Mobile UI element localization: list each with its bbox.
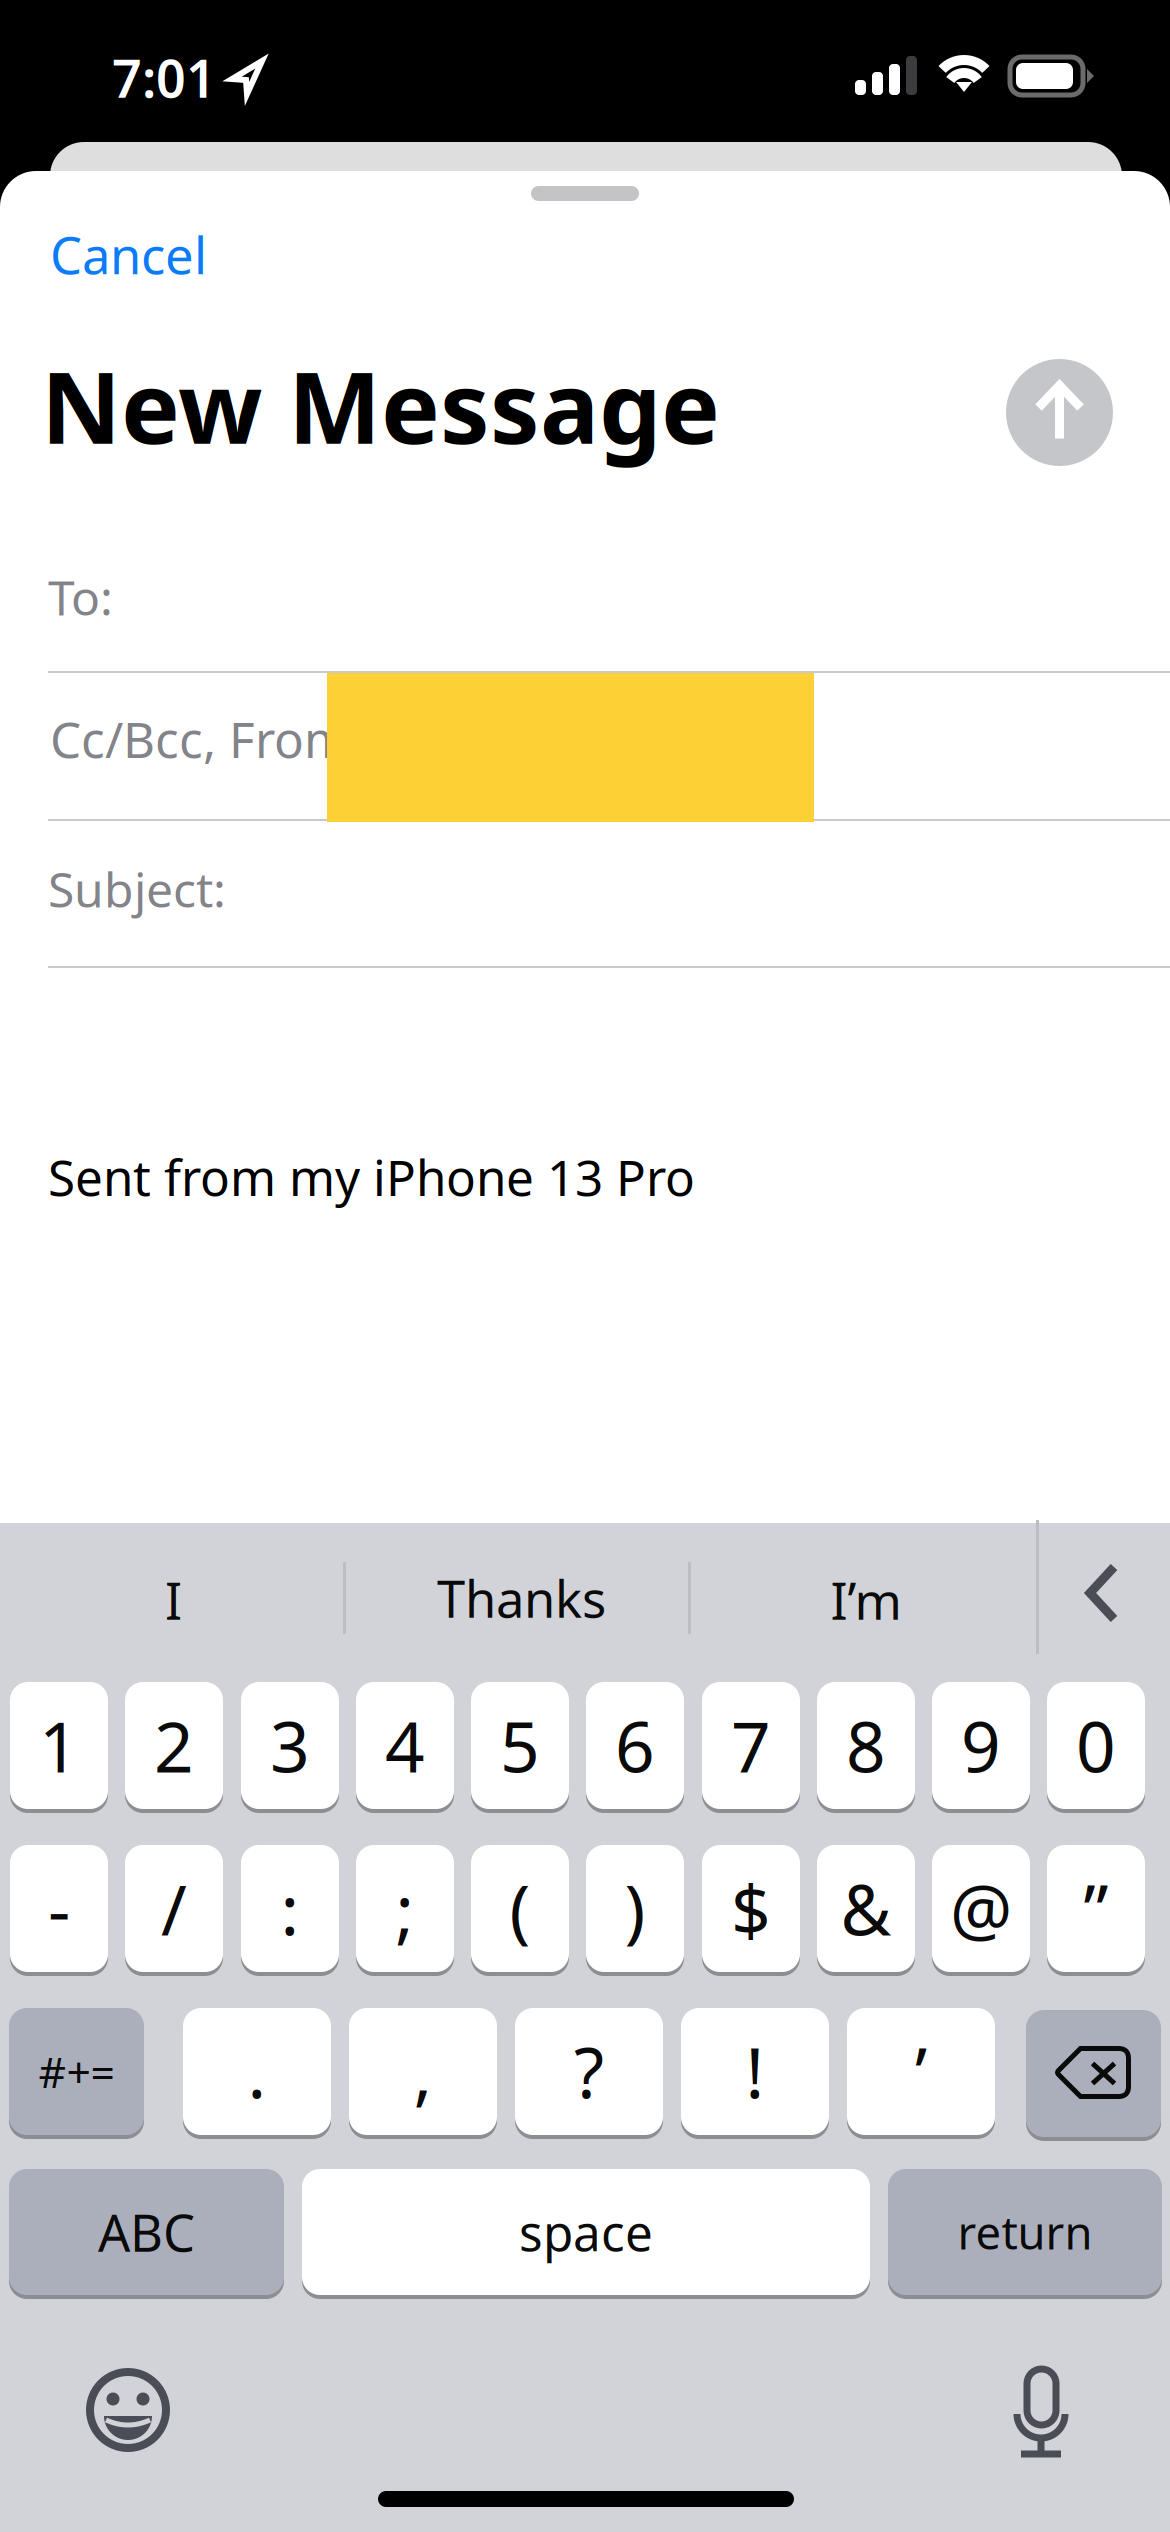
- button[interactable]: space: [302, 2169, 870, 2299]
- button[interactable]: I: [2, 1540, 345, 1660]
- staticText: ): [624, 1862, 645, 1955]
- staticText: return: [957, 2202, 1092, 2262]
- staticText: ’: [915, 2025, 927, 2118]
- staticText: 5: [500, 1699, 540, 1792]
- button[interactable]: I’m: [692, 1540, 1040, 1660]
- button[interactable]: Delete: [1026, 2008, 1161, 2139]
- staticText: Sent from my iPhone 13 Pro: [48, 1144, 695, 1209]
- staticText: I’m: [830, 1566, 901, 1634]
- button[interactable]: &: [817, 1845, 915, 1976]
- button[interactable]: 3: [241, 1682, 339, 1813]
- staticText: Subject:: [48, 857, 226, 921]
- button[interactable]: !: [681, 2008, 829, 2139]
- staticText: .: [247, 2025, 266, 2118]
- staticText: 2: [154, 1699, 194, 1792]
- button[interactable]: ’: [847, 2008, 995, 2139]
- button[interactable]: Cc/Bcc, From: [0, 671, 1170, 819]
- button[interactable]: 9: [932, 1682, 1030, 1813]
- staticText: 1: [39, 1699, 79, 1792]
- staticText: ABC: [98, 2198, 195, 2266]
- staticText: @: [950, 1862, 1012, 1955]
- button[interactable]: :: [241, 1845, 339, 1976]
- button[interactable]: 8: [817, 1682, 915, 1813]
- button[interactable]: Cancel: [0, 213, 260, 309]
- staticText: (: [509, 1862, 530, 1955]
- button[interactable]: 1: [10, 1682, 108, 1813]
- button[interactable]: 7: [702, 1682, 800, 1813]
- button[interactable]: ?: [515, 2008, 663, 2139]
- staticText: 7:01: [112, 43, 216, 112]
- staticText: Thanks: [437, 1564, 606, 1632]
- button[interactable]: #+=: [9, 2008, 144, 2139]
- button[interactable]: Emoji keyboard: [63, 2345, 193, 2475]
- staticText: $: [731, 1862, 771, 1955]
- button[interactable]: $: [702, 1845, 800, 1976]
- button[interactable]: Dictation: [977, 2345, 1107, 2475]
- button[interactable]: return: [888, 2169, 1162, 2299]
- staticText: &: [840, 1862, 891, 1955]
- staticText: 7: [731, 1699, 771, 1792]
- staticText: #+=: [38, 2043, 114, 2100]
- staticText: -: [48, 1862, 70, 1955]
- staticText: Cancel: [50, 221, 207, 288]
- button[interactable]: Thanks: [349, 1538, 694, 1658]
- staticText: ?: [574, 2025, 604, 2118]
- staticText: 8: [846, 1699, 886, 1792]
- staticText: ”: [1083, 1862, 1108, 1955]
- staticText: 6: [615, 1699, 655, 1792]
- button[interactable]: ,: [349, 2008, 497, 2139]
- staticText: space: [519, 2199, 653, 2265]
- button[interactable]: Subject:: [0, 819, 1170, 966]
- button[interactable]: ;: [356, 1845, 454, 1976]
- staticText: Cc/Bcc, From: [50, 706, 350, 771]
- button[interactable]: ABC: [9, 2169, 284, 2299]
- button[interactable]: @: [932, 1845, 1030, 1976]
- staticText: New Message: [41, 340, 720, 471]
- staticText: 4: [385, 1699, 425, 1792]
- button[interactable]: Send: [1006, 359, 1113, 466]
- staticText: 0: [1076, 1699, 1116, 1792]
- button[interactable]: 5: [471, 1682, 569, 1813]
- staticText: 9: [961, 1699, 1001, 1792]
- staticText: I: [165, 1566, 182, 1634]
- button[interactable]: .: [183, 2008, 331, 2139]
- button[interactable]: To:: [0, 523, 1170, 671]
- button[interactable]: Sent from my iPhone 13 Pro: [0, 968, 1170, 1523]
- button[interactable]: ”: [1047, 1845, 1145, 1976]
- button[interactable]: (: [471, 1845, 569, 1976]
- button[interactable]: /: [125, 1845, 223, 1976]
- button[interactable]: 2: [125, 1682, 223, 1813]
- button[interactable]: ): [586, 1845, 684, 1976]
- button[interactable]: 0: [1047, 1682, 1145, 1813]
- button[interactable]: More predictions: [1035, 1533, 1169, 1653]
- staticText: ,: [413, 2025, 432, 2118]
- staticText: 3: [270, 1699, 310, 1792]
- button[interactable]: -: [10, 1845, 108, 1976]
- button[interactable]: 4: [356, 1682, 454, 1813]
- button[interactable]: 6: [586, 1682, 684, 1813]
- staticText: /: [161, 1862, 187, 1955]
- staticText: :: [280, 1862, 299, 1955]
- staticText: !: [745, 2025, 764, 2118]
- staticText: ;: [395, 1862, 414, 1955]
- staticText: To:: [48, 565, 113, 629]
